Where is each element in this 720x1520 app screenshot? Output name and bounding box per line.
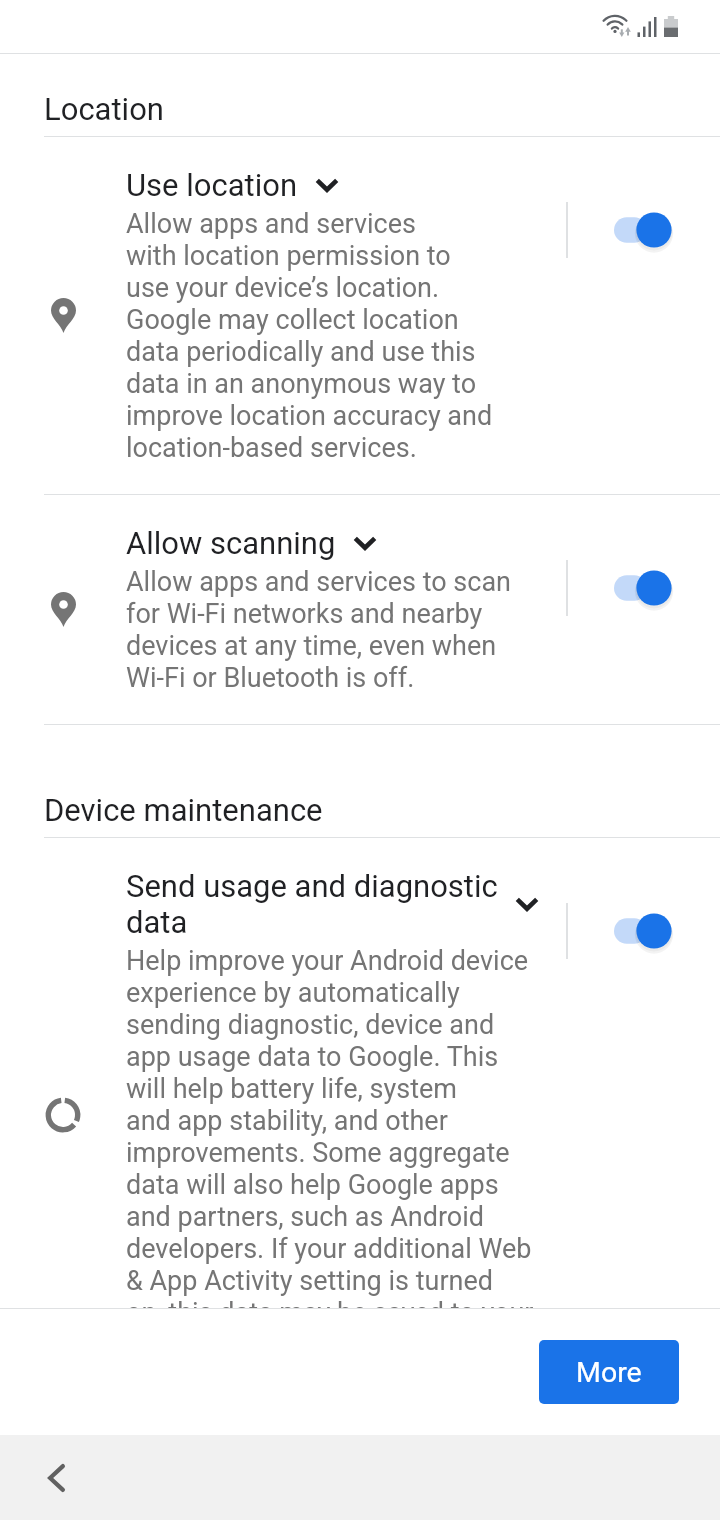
staticText: Device maintenance (44, 792, 323, 828)
button[interactable]: Toggle Allow scanning (614, 560, 690, 616)
button[interactable]: More (539, 1340, 679, 1404)
staticText: Help improve your Android device experie… (126, 945, 534, 1308)
staticText: Allow apps and services to scan for Wi-F… (126, 566, 511, 694)
button[interactable]: Use location (0, 137, 720, 494)
staticText: Location (44, 91, 164, 127)
button[interactable]: Allow scanning (0, 495, 720, 724)
button[interactable]: Back (27, 1449, 85, 1507)
button[interactable]: Toggle Use location (614, 202, 690, 258)
button[interactable]: Expand Send usage and diagnostic data (509, 886, 545, 922)
staticText: Allow apps and services with location pe… (126, 208, 493, 464)
staticText: Use location (126, 167, 298, 203)
staticText: Send usage and diagnostic data (126, 868, 498, 940)
button[interactable]: Expand Allow scanning (347, 525, 383, 561)
staticText: More (576, 1356, 642, 1389)
button[interactable]: Toggle Send usage and diagnostic data (614, 903, 690, 959)
staticText: Allow scanning (126, 525, 336, 561)
button[interactable]: Expand Use location (309, 167, 345, 203)
button[interactable]: Send usage and diagnostic data (0, 838, 720, 1308)
